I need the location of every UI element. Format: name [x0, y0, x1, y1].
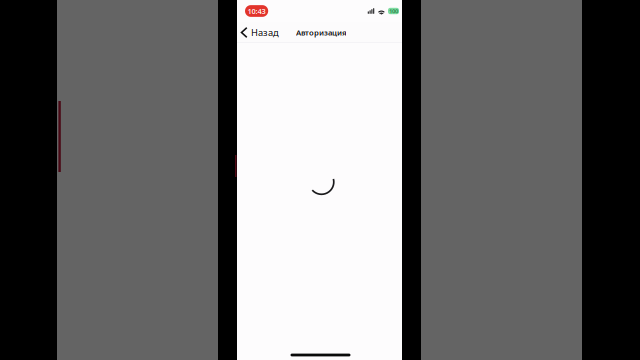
button[interactable]: Назад — [237, 23, 279, 42]
staticText: Назад — [251, 26, 279, 39]
staticText: 10:43 — [248, 6, 266, 16]
staticText: 100 — [389, 7, 398, 15]
staticText: Авторизация — [296, 27, 347, 38]
button[interactable]: 10:43 — [245, 5, 268, 17]
